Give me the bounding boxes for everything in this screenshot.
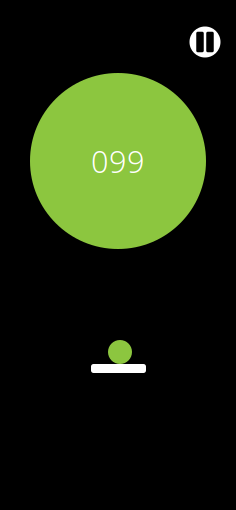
button[interactable]: Play field <box>0 0 236 510</box>
staticText: 099 <box>91 141 145 181</box>
button[interactable]: Pause <box>183 20 227 64</box>
